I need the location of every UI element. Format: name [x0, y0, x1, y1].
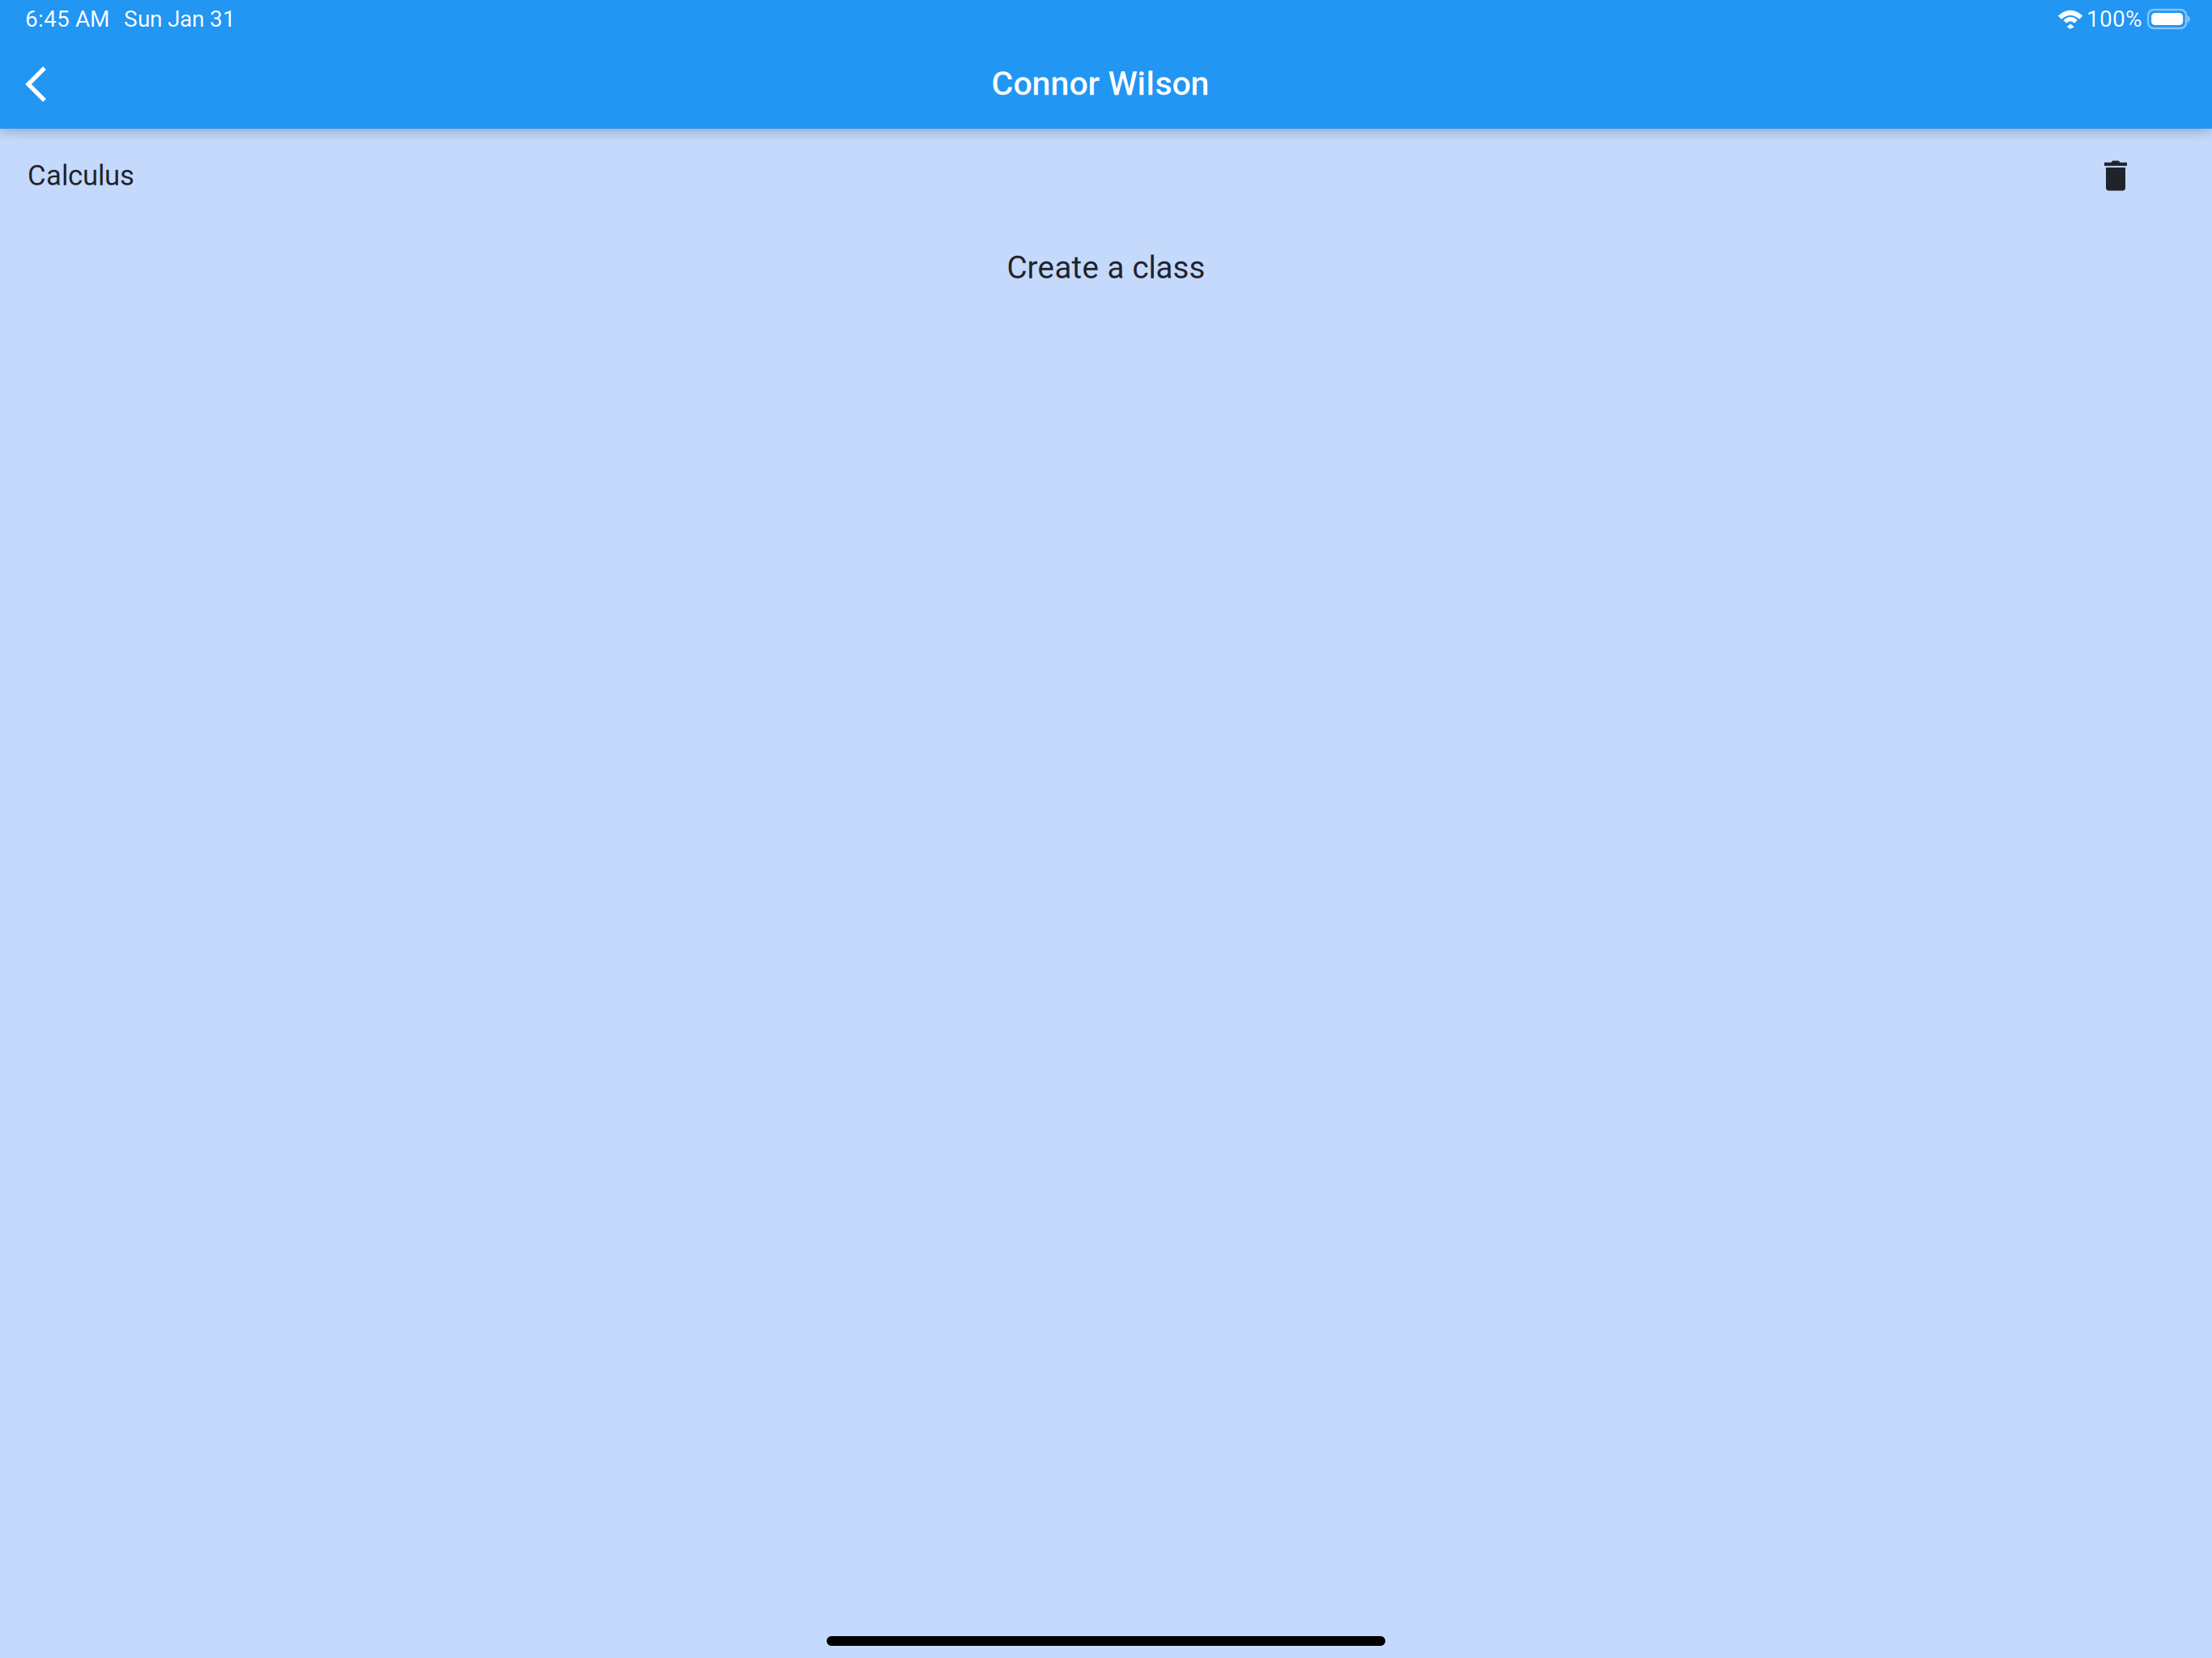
button[interactable]: Delete class — [2093, 153, 2138, 198]
button[interactable]: Back — [11, 54, 62, 113]
button[interactable]: Create a class — [987, 239, 1225, 297]
button[interactable]: Calculus — [28, 153, 2093, 198]
staticText: Connor Wilson — [991, 64, 1209, 103]
staticText: 100% — [2087, 6, 2142, 32]
staticText: 6:45 AM — [25, 6, 109, 32]
staticText: Calculus — [28, 159, 134, 192]
staticText: Create a class — [1007, 249, 1205, 286]
staticText: Sun Jan 31 — [124, 6, 236, 32]
